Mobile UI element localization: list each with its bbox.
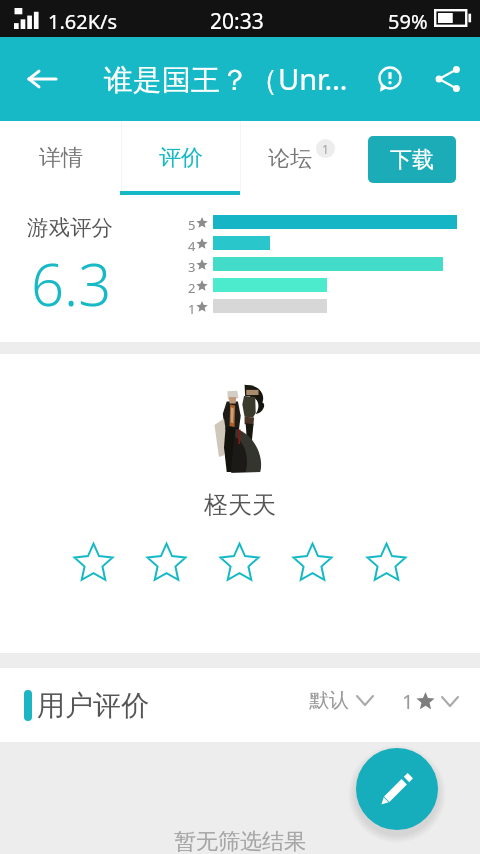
staticText: 59%: [388, 8, 428, 35]
button[interactable]: Rate 3 star: [213, 535, 265, 587]
staticText: 谁是国王？（Unr…: [104, 59, 348, 99]
staticText: 1: [402, 688, 414, 715]
staticText: 20:33: [210, 7, 264, 36]
staticText: 1: [322, 141, 329, 157]
button[interactable]: 默认: [309, 688, 373, 713]
staticText: 下载: [390, 146, 434, 174]
staticText: 2: [188, 279, 196, 294]
button[interactable]: 详情: [0, 121, 121, 195]
staticText: 默认: [309, 688, 349, 713]
staticText: 1.62K/s: [48, 8, 118, 35]
button[interactable]: Rate 5 star: [360, 535, 412, 587]
staticText: 详情: [39, 144, 83, 172]
staticText: 1: [188, 300, 196, 315]
staticText: 柽天天: [0, 490, 480, 520]
staticText: 暂无筛选结果: [0, 828, 480, 854]
button[interactable]: 评价: [122, 121, 240, 195]
button[interactable]: Write review: [356, 748, 438, 830]
button[interactable]: 1: [402, 688, 458, 715]
staticText: 评价: [159, 144, 203, 172]
button[interactable]: Report: [363, 37, 415, 121]
staticText: 论坛: [268, 145, 312, 173]
button[interactable]: Rate 4 star: [286, 535, 338, 587]
staticText: 用户评价: [37, 688, 149, 723]
staticText: 5: [188, 216, 196, 231]
button[interactable]: 论坛: [241, 121, 361, 195]
button[interactable]: Back: [14, 37, 70, 121]
staticText: 6.3: [31, 244, 112, 323]
button[interactable]: Share: [421, 37, 475, 121]
staticText: 3: [188, 258, 196, 273]
button[interactable]: Rate 2 star: [140, 535, 192, 587]
staticText: 4: [188, 237, 196, 252]
button[interactable]: Rate 1 star: [67, 535, 119, 587]
staticText: 游戏评分: [27, 214, 113, 241]
button[interactable]: 下载: [368, 136, 456, 183]
